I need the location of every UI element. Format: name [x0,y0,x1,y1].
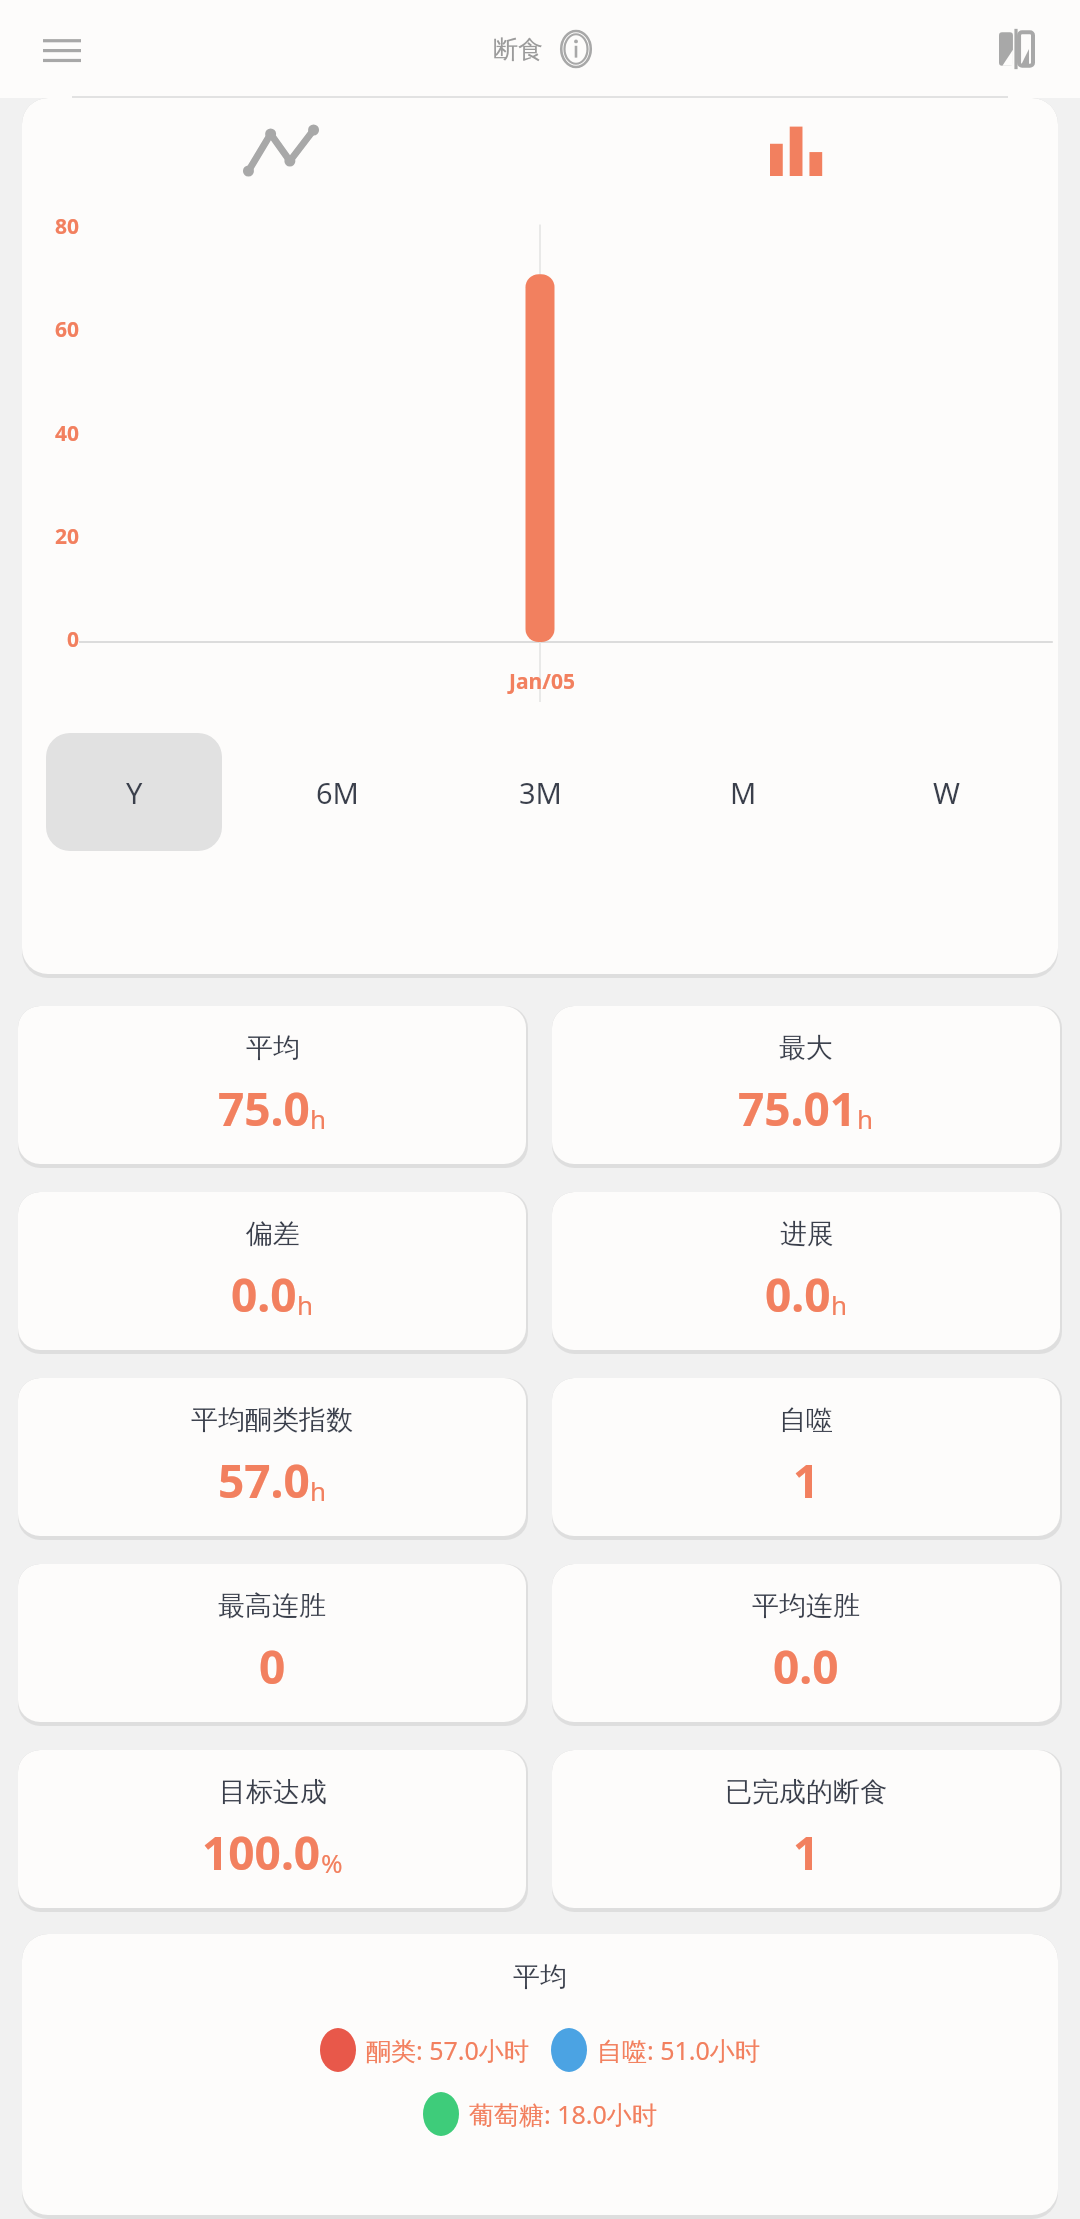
staticText: h [297,1287,314,1322]
button[interactable]: Line chart [22,98,540,202]
staticText: Y [126,773,143,812]
button[interactable]: 平均连胜 [552,1564,1060,1722]
button[interactable]: M [656,733,831,851]
staticText: % [321,1845,343,1880]
staticText: 40 [55,419,80,448]
button[interactable]: 6M [250,733,425,851]
staticText: 75.01 [738,1077,857,1140]
staticText: 酮类: 57.0小时 [366,2033,529,2067]
staticText: 6M [316,773,359,812]
staticText: h [310,1101,327,1136]
button[interactable]: 平均 [18,1006,526,1164]
staticText: 自噬 [779,1403,833,1437]
button[interactable]: Y [46,733,222,851]
staticText: 平均连胜 [752,1589,860,1623]
staticText: h [831,1287,848,1322]
staticText: h [310,1473,327,1508]
staticText: 目标达成 [219,1775,327,1809]
button[interactable]: 进展 [552,1192,1060,1350]
button[interactable]: Menu [34,21,90,77]
staticText: W [933,773,960,812]
staticText: 最高连胜 [218,1589,326,1623]
button[interactable]: 已完成的断食 [552,1750,1060,1908]
staticText: 75.0 [218,1077,310,1140]
button[interactable]: 3M [453,733,628,851]
staticText: 80 [55,212,80,241]
staticText: 3M [519,773,562,812]
button[interactable]: Compare [988,21,1044,77]
staticText: 平均酮类指数 [191,1403,353,1437]
button[interactable]: Info [553,26,599,72]
staticText: 20 [55,522,80,551]
staticText: 1 [793,1821,820,1884]
staticText: 进展 [780,1217,834,1251]
button[interactable]: 目标达成 [18,1750,526,1908]
staticText: 最大 [779,1031,833,1065]
staticText: Jan/05 [509,667,575,696]
staticText: 0.0 [773,1635,839,1698]
staticText: 已完成的断食 [725,1775,887,1809]
staticText: h [857,1101,874,1136]
button[interactable]: 最大 [552,1006,1060,1164]
staticText: 60 [55,315,80,344]
staticText: 0.0 [765,1263,831,1326]
staticText: 57.0 [218,1449,310,1512]
button[interactable]: 最高连胜 [18,1564,526,1722]
button[interactable]: Bar chart [540,98,1058,202]
button[interactable]: 偏差 [18,1192,526,1350]
staticText: 100.0 [202,1821,321,1884]
staticText: 平均 [246,1031,300,1065]
staticText: 0.0 [231,1263,297,1326]
staticText: 0 [67,625,80,654]
staticText: 1 [793,1449,820,1512]
staticText: 自噬: 51.0小时 [597,2033,760,2067]
staticText: 偏差 [246,1217,300,1251]
button[interactable]: W [859,733,1034,851]
staticText: 平均 [513,1960,567,1994]
staticText: 0 [259,1635,286,1698]
button[interactable]: 平均酮类指数 [18,1378,526,1536]
staticText: 葡萄糖: 18.0小时 [469,2097,657,2131]
staticText: 断食 [493,34,543,65]
staticText: M [730,773,757,812]
button[interactable]: 自噬 [552,1378,1060,1536]
